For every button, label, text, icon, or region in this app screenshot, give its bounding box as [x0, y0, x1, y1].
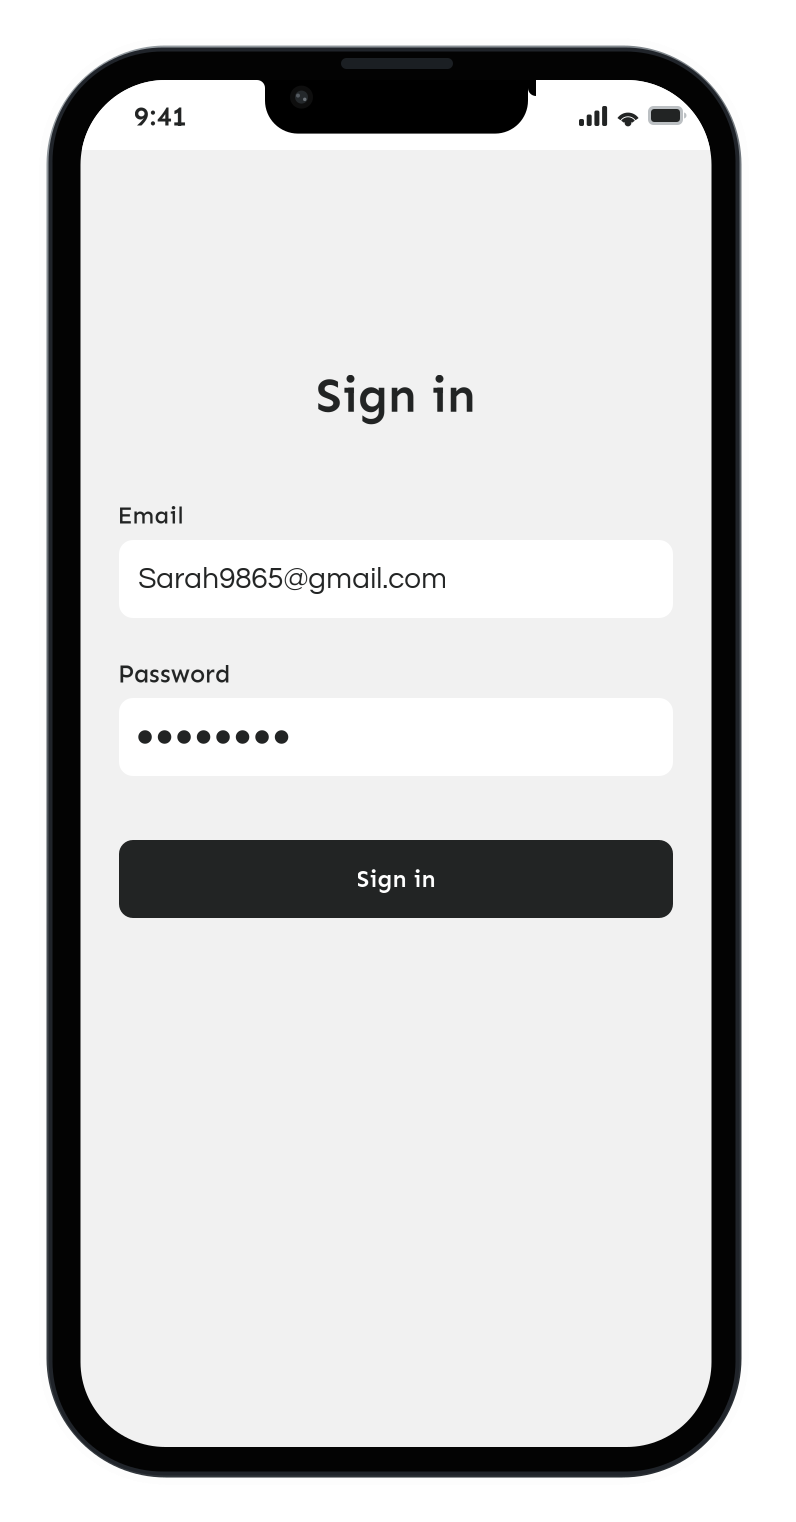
button[interactable]: Sign in	[119, 840, 673, 918]
staticText: Sign in	[356, 865, 435, 893]
staticText: Sarah9865@gmail.com	[138, 564, 447, 594]
staticText: Email	[118, 501, 184, 530]
staticText: Sign in	[316, 366, 476, 425]
staticText: Password	[118, 659, 230, 689]
staticText: 9:41	[134, 100, 187, 133]
